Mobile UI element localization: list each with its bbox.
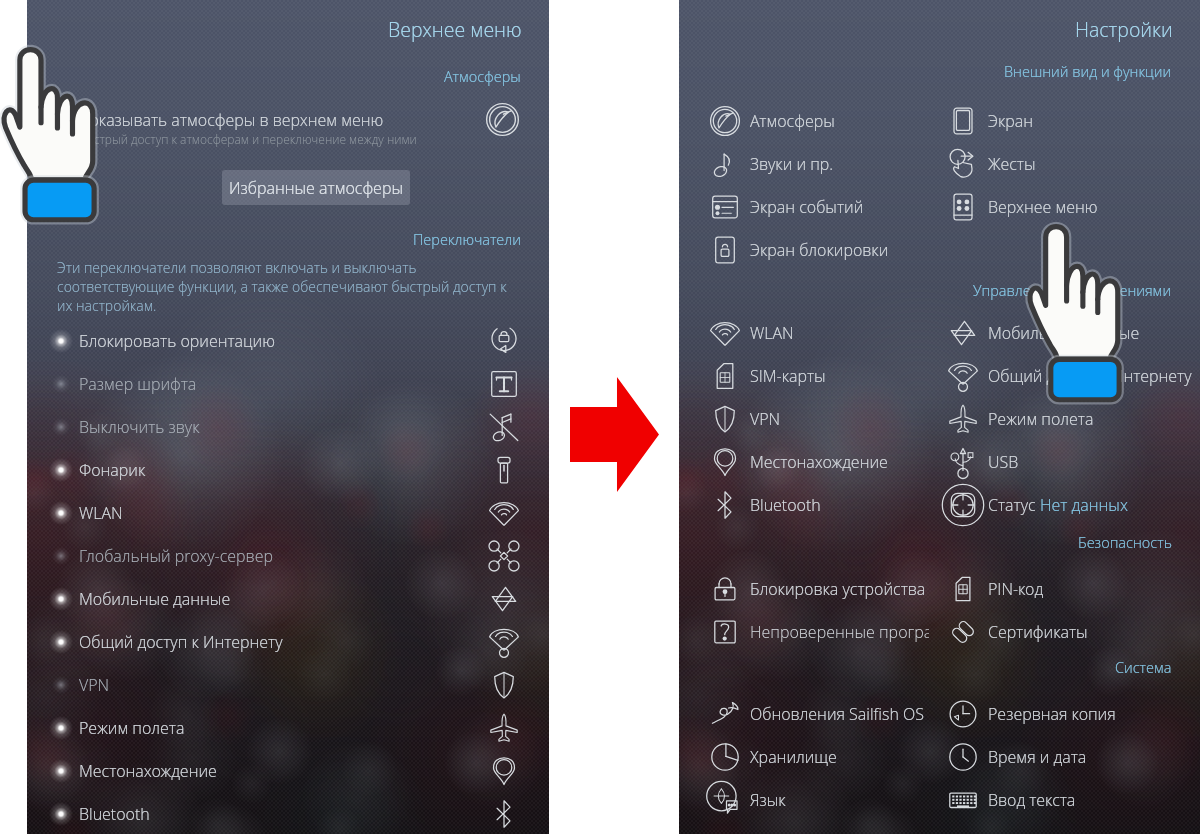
- staticText: Внешний вид и функции: [1004, 62, 1172, 82]
- button[interactable]: Атмосферы: [710, 99, 929, 142]
- staticText: Время и дата: [988, 746, 1087, 768]
- staticText: Настройки: [1075, 16, 1173, 43]
- staticText: Местонахождение: [79, 760, 217, 782]
- other: Next step: [570, 377, 659, 492]
- button[interactable]: Местонахождение: [27, 749, 549, 792]
- staticText: Размер шрифта: [79, 373, 197, 395]
- button[interactable]: Язык: [710, 778, 929, 821]
- button[interactable]: Выключить звук: [27, 405, 549, 448]
- button[interactable]: Мобильные данные: [27, 577, 549, 620]
- button[interactable]: Верхнее меню: [948, 185, 1200, 228]
- staticText: USB: [988, 451, 1019, 473]
- button[interactable]: Ввод текста: [948, 778, 1200, 821]
- button[interactable]: VPN: [27, 663, 549, 706]
- button[interactable]: Непроверенные программы: [710, 610, 929, 653]
- button[interactable]: USB: [948, 440, 1200, 483]
- button[interactable]: [710, 821, 929, 834]
- button[interactable]: WLAN: [27, 491, 549, 534]
- staticText: Непроверенные программы: [750, 621, 929, 643]
- button[interactable]: Размер шрифта: [27, 362, 549, 405]
- staticText: Эти переключатели позволяют включать и в…: [57, 258, 507, 315]
- staticText: Выключить звук: [79, 416, 200, 438]
- staticText: Безопасность: [1078, 533, 1172, 553]
- staticText: Сертификаты: [988, 621, 1088, 643]
- button[interactable]: Bluetooth: [27, 792, 549, 834]
- button[interactable]: Экран событий: [710, 185, 929, 228]
- staticText: SIM-карты: [750, 365, 826, 387]
- button[interactable]: Обновления Sailfish OS: [710, 692, 929, 735]
- staticText: Атмосферы: [444, 67, 521, 87]
- button[interactable]: Фонарик: [27, 448, 549, 491]
- staticText: PIN-код: [988, 578, 1044, 600]
- staticText: Фонарик: [79, 459, 146, 481]
- staticText: Статус: [988, 494, 1040, 516]
- staticText: Избранные атмосферы: [229, 177, 403, 199]
- button[interactable]: Хранилище: [710, 735, 929, 778]
- staticText: Быстрый доступ к атмосферам и переключен…: [78, 131, 417, 147]
- button[interactable]: Экран блокировки: [710, 228, 929, 271]
- staticText: Мобильные данные: [988, 322, 1140, 344]
- button[interactable]: Сертификаты: [948, 610, 1200, 653]
- button[interactable]: Избранные атмосферы: [222, 170, 410, 205]
- staticText: Общий доступ к Интернету: [79, 631, 283, 653]
- staticText: Жесты: [988, 153, 1036, 175]
- staticText: Bluetooth: [750, 494, 821, 516]
- button[interactable]: SIM-карты: [710, 354, 929, 397]
- button[interactable]: Статус: [948, 483, 1200, 526]
- staticText: Мобильные данные: [79, 588, 231, 610]
- staticText: Переключатели: [413, 230, 521, 250]
- button[interactable]: Блокировать ориентацию: [27, 319, 549, 362]
- staticText: Экран: [988, 110, 1034, 132]
- staticText: Резервная копия: [988, 703, 1116, 725]
- staticText: Верхнее меню: [388, 16, 522, 43]
- staticText: Режим полета: [988, 408, 1094, 430]
- staticText: Верхнее меню: [988, 196, 1098, 218]
- button[interactable]: Экран: [948, 99, 1200, 142]
- staticText: Bluetooth: [79, 803, 150, 825]
- button[interactable]: Общий доступ к Интернету: [27, 620, 549, 663]
- staticText: Нет данных: [1040, 494, 1128, 516]
- staticText: Управление подключениями: [973, 281, 1172, 301]
- button[interactable]: Режим полета: [948, 397, 1200, 440]
- staticText: Блокировка устройства: [750, 578, 926, 600]
- button[interactable]: Жесты: [948, 142, 1200, 185]
- button[interactable]: VPN: [710, 397, 929, 440]
- button[interactable]: Блокировка устройства: [710, 567, 929, 610]
- button[interactable]: Режим полета: [27, 706, 549, 749]
- staticText: Ввод текста: [988, 789, 1076, 811]
- staticText: Звуки и пр.: [750, 153, 834, 175]
- staticText: VPN: [750, 408, 781, 430]
- button[interactable]: Звуки и пр.: [710, 142, 929, 185]
- staticText: Атмосферы: [750, 110, 835, 132]
- staticText: WLAN: [750, 322, 794, 344]
- staticText: VPN: [79, 674, 110, 696]
- button[interactable]: Резервная копия: [948, 692, 1200, 735]
- button[interactable]: Время и дата: [948, 735, 1200, 778]
- button[interactable]: [948, 821, 1200, 834]
- staticText: Блокировать ориентацию: [79, 330, 275, 352]
- staticText: Обновления Sailfish OS: [750, 703, 924, 725]
- button[interactable]: Мобильные данные: [948, 311, 1200, 354]
- staticText: Глобальный proxy-сервер: [79, 545, 273, 567]
- staticText: Режим полета: [79, 717, 185, 739]
- button[interactable]: Глобальный proxy-сервер: [27, 534, 549, 577]
- staticText: Показывать атмосферы в верхнем меню: [78, 109, 384, 131]
- staticText: Общий доступ к Интернету: [988, 365, 1192, 387]
- button[interactable]: Общий доступ к Интернету: [948, 354, 1200, 397]
- staticText: Экран событий: [750, 196, 864, 218]
- button[interactable]: Bluetooth: [710, 483, 929, 526]
- button[interactable]: PIN-код: [948, 567, 1200, 610]
- staticText: Экран блокировки: [750, 239, 889, 261]
- staticText: Система: [1115, 658, 1172, 678]
- staticText: Хранилище: [750, 746, 837, 768]
- button[interactable]: WLAN: [710, 311, 929, 354]
- staticText: Местонахождение: [750, 451, 888, 473]
- staticText: WLAN: [79, 502, 123, 524]
- button[interactable]: Местонахождение: [710, 440, 929, 483]
- staticText: Язык: [750, 789, 786, 811]
